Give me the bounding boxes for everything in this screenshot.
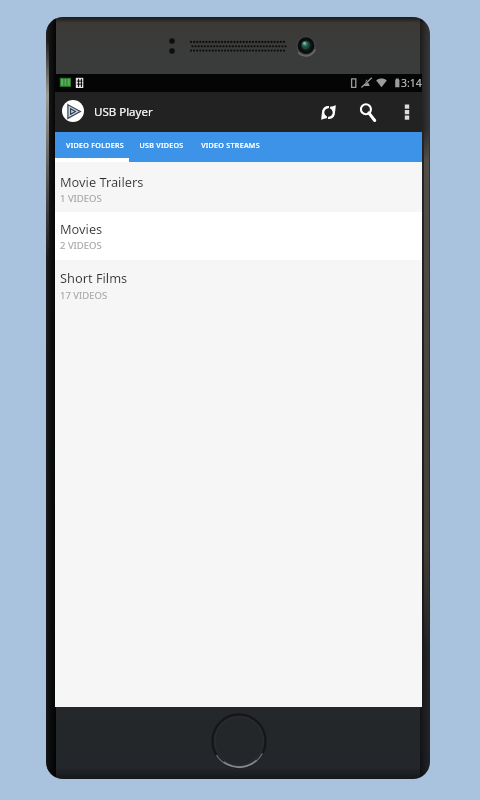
button[interactable]: VIDEO FOLDERS bbox=[55, 132, 129, 162]
staticText: VIDEO FOLDERS bbox=[66, 140, 124, 150]
button[interactable]: USB Player logo bbox=[62, 100, 84, 122]
staticText: Movies bbox=[60, 220, 103, 237]
button[interactable]: Home bbox=[209, 711, 269, 771]
button[interactable]: Search bbox=[346, 92, 390, 132]
staticText: 17 VIDEOS bbox=[60, 289, 108, 302]
staticText: 2 VIDEOS bbox=[60, 239, 102, 252]
button[interactable]: VIDEO STREAMS bbox=[194, 132, 267, 162]
button[interactable]: USB VIDEOS bbox=[129, 132, 194, 162]
button[interactable]: Movies bbox=[55, 212, 422, 260]
staticText: Movie Trailers bbox=[60, 173, 144, 190]
staticText: 3:14 bbox=[401, 76, 422, 90]
button[interactable]: More options bbox=[392, 92, 422, 132]
staticText: USB VIDEOS bbox=[139, 140, 184, 150]
staticText: 1 VIDEOS bbox=[60, 192, 102, 205]
button[interactable]: Short Films bbox=[55, 260, 422, 308]
button[interactable]: Refresh bbox=[306, 92, 350, 132]
button[interactable]: Movie Trailers bbox=[55, 162, 422, 212]
staticText: Short Films bbox=[60, 269, 128, 286]
staticText: USB Player bbox=[94, 104, 153, 120]
staticText: VIDEO STREAMS bbox=[201, 140, 260, 150]
